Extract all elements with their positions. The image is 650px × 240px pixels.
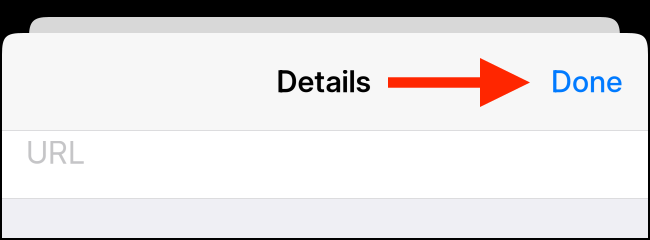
button[interactable]: Done xyxy=(535,50,625,113)
staticText: URL xyxy=(26,134,85,171)
staticText: Done xyxy=(551,64,623,99)
button[interactable]: URL xyxy=(2,131,648,198)
staticText: Details xyxy=(276,64,371,99)
